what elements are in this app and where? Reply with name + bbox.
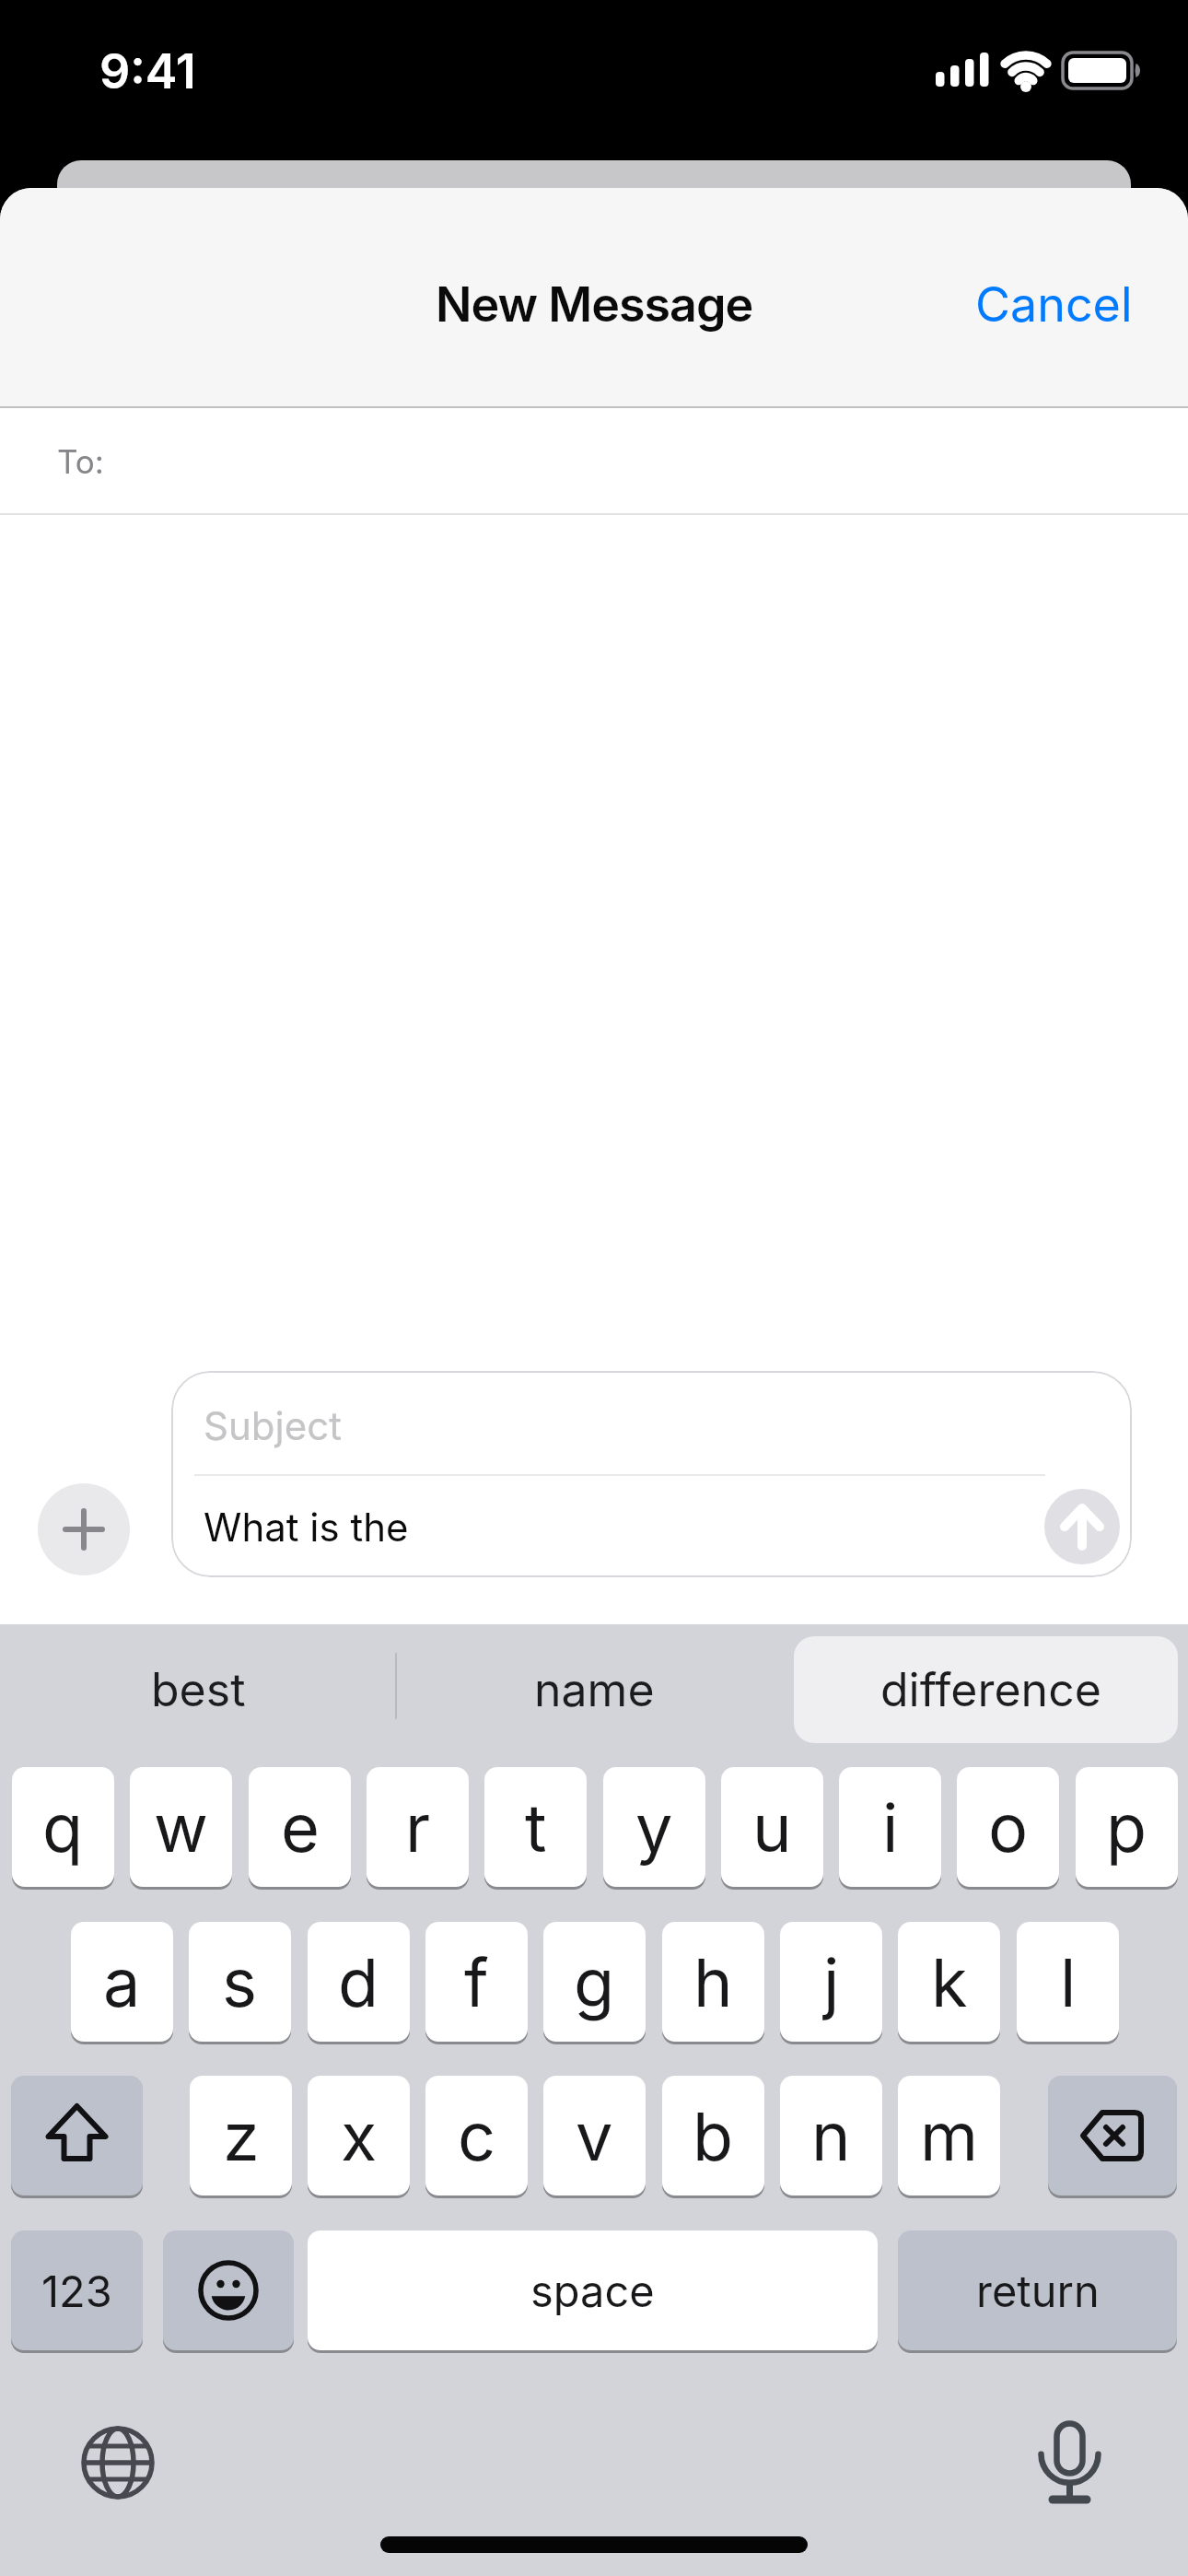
staticText: name <box>534 1662 655 1717</box>
staticText: m <box>920 2096 979 2176</box>
staticText: v <box>576 2096 613 2176</box>
button[interactable]: w <box>130 1767 232 1887</box>
button[interactable]: u <box>721 1767 823 1887</box>
button[interactable]: j <box>780 1922 882 2042</box>
staticText: Subject <box>204 1402 342 1449</box>
button[interactable]: r <box>367 1767 469 1887</box>
staticText: Cancel <box>975 275 1133 334</box>
staticText: 9:41 <box>99 42 196 100</box>
staticText: w <box>154 1787 208 1868</box>
button[interactable]: e <box>249 1767 351 1887</box>
button[interactable]: o <box>957 1767 1059 1887</box>
button[interactable] <box>163 2231 294 2350</box>
staticText: g <box>574 1942 615 2022</box>
button[interactable] <box>0 408 1188 515</box>
staticText: x <box>341 2096 378 2176</box>
button[interactable]: m <box>898 2076 1000 2195</box>
staticText: b <box>693 2096 734 2176</box>
button[interactable] <box>794 1636 1178 1743</box>
button[interactable]: h <box>662 1922 764 2042</box>
button[interactable]: g <box>543 1922 646 2042</box>
button[interactable] <box>1048 2076 1177 2195</box>
staticText: c <box>458 2096 496 2176</box>
staticText: t <box>525 1787 547 1868</box>
button[interactable]: Cancel <box>949 253 1133 355</box>
button[interactable]: s <box>189 1922 291 2042</box>
staticText: p <box>1106 1787 1147 1868</box>
staticText: u <box>752 1787 792 1868</box>
staticText: h <box>693 1942 733 2022</box>
button[interactable]: a <box>71 1922 173 2042</box>
button[interactable]: c <box>425 2076 528 2195</box>
staticText: To: <box>57 442 104 481</box>
button[interactable]: space <box>308 2231 878 2350</box>
button[interactable]: f <box>425 1922 528 2042</box>
button[interactable]: y <box>603 1767 705 1887</box>
staticText: z <box>223 2096 260 2176</box>
button[interactable]: i <box>839 1767 941 1887</box>
button[interactable]: k <box>898 1922 1000 2042</box>
button[interactable] <box>1044 1489 1120 1564</box>
staticText: n <box>811 2096 851 2176</box>
button[interactable]: q <box>12 1767 114 1887</box>
button[interactable]: d <box>308 1922 410 2042</box>
staticText: k <box>931 1942 968 2022</box>
staticText: l <box>1060 1942 1077 2022</box>
staticText: New Message <box>436 275 753 334</box>
staticText: 123 <box>41 2265 112 2317</box>
staticText: q <box>42 1787 84 1868</box>
button[interactable]: l <box>1017 1922 1119 2042</box>
staticText: d <box>338 1942 379 2022</box>
button[interactable]: n <box>780 2076 882 2195</box>
button[interactable]: t <box>484 1767 587 1887</box>
button[interactable] <box>11 2076 143 2195</box>
button[interactable]: b <box>662 2076 764 2195</box>
staticText: r <box>405 1787 431 1868</box>
button[interactable] <box>38 1483 130 1575</box>
staticText: y <box>635 1787 673 1868</box>
button[interactable]: p <box>1076 1767 1178 1887</box>
button[interactable]: z <box>190 2076 292 2195</box>
button[interactable]: return <box>898 2231 1177 2350</box>
staticText: difference <box>880 1662 1101 1717</box>
staticText: o <box>988 1787 1029 1868</box>
staticText: i <box>882 1787 899 1868</box>
staticText: return <box>976 2265 1100 2317</box>
staticText: s <box>222 1942 258 2022</box>
staticText: What is the <box>204 1504 409 1551</box>
staticText: e <box>281 1787 320 1868</box>
button[interactable]: 123 <box>11 2231 143 2350</box>
staticText: best <box>151 1662 246 1717</box>
staticText: j <box>823 1942 840 2022</box>
button[interactable]: x <box>308 2076 410 2195</box>
staticText: space <box>530 2265 655 2317</box>
staticText: f <box>464 1942 489 2022</box>
button[interactable]: v <box>543 2076 646 2195</box>
staticText: a <box>103 1942 141 2022</box>
